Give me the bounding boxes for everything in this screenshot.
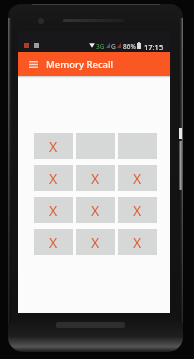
button[interactable]: Tile marked X xyxy=(34,133,73,159)
button[interactable]: Tile marked X xyxy=(76,229,115,255)
button[interactable]: Tile marked X xyxy=(118,165,157,191)
staticText: X xyxy=(91,201,100,220)
button[interactable]: Tile marked X xyxy=(76,165,115,191)
button[interactable]: Tile marked X xyxy=(118,229,157,255)
staticText: X xyxy=(49,137,58,156)
button[interactable]: Tile marked X xyxy=(118,197,157,223)
staticText: X xyxy=(91,233,100,252)
staticText: X xyxy=(133,233,142,252)
button[interactable]: Open navigation menu xyxy=(25,56,41,72)
staticText: X xyxy=(133,201,142,220)
staticText: X xyxy=(49,233,58,252)
staticText: X xyxy=(133,169,142,188)
staticText: 17:15 xyxy=(144,42,164,52)
staticText: 86% xyxy=(123,42,136,51)
staticText: 3G xyxy=(96,42,105,51)
button[interactable]: Tile marked X xyxy=(34,229,73,255)
staticText: Memory Recall xyxy=(46,58,114,71)
staticText: G xyxy=(111,42,116,51)
staticText: X xyxy=(49,169,58,188)
button[interactable]: Tile marked X xyxy=(34,165,73,191)
button[interactable]: Tile marked X xyxy=(76,197,115,223)
staticText: X xyxy=(49,201,58,220)
button[interactable]: Tile marked X xyxy=(34,197,73,223)
staticText: X xyxy=(91,169,100,188)
